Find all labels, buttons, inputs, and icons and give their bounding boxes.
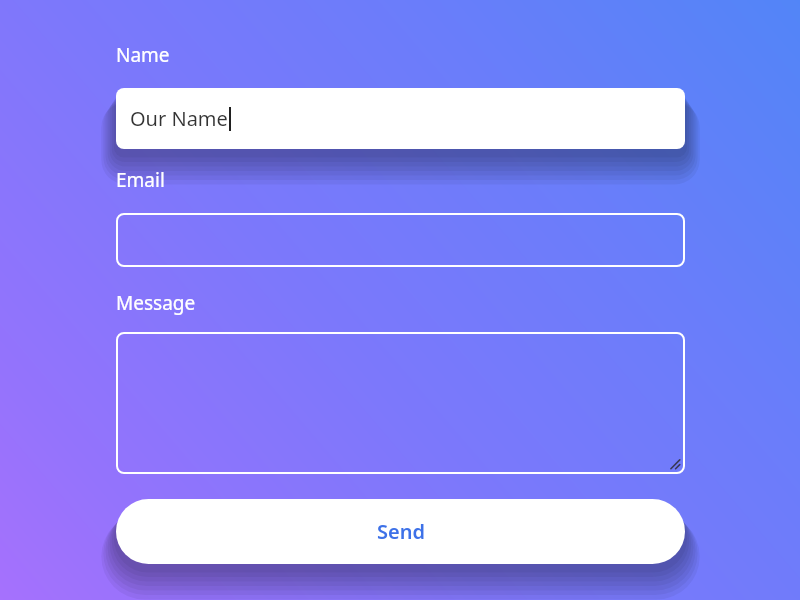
button[interactable]: Our Name — [116, 88, 685, 149]
staticText: Name — [116, 42, 170, 68]
staticText: Message — [116, 290, 196, 316]
button[interactable]: Send — [116, 499, 685, 564]
button[interactable] — [116, 213, 685, 267]
staticText: Email — [116, 167, 165, 193]
staticText: Send — [377, 518, 425, 545]
button[interactable] — [116, 332, 685, 474]
staticText: Our Name — [130, 105, 228, 132]
